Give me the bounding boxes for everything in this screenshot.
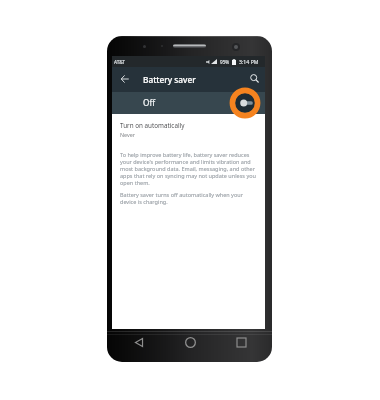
- staticText: 3:14 PM: [239, 58, 259, 65]
- staticText: 95%: [220, 59, 230, 65]
- staticText: Never: [120, 131, 136, 138]
- button[interactable]: Navigate up: [116, 70, 133, 87]
- button[interactable]: Battery saver toggle, off: [228, 86, 262, 120]
- staticText: Battery saver: [143, 74, 196, 85]
- button[interactable]: Off: [112, 92, 265, 114]
- button[interactable]: Back: [130, 333, 148, 351]
- staticText: Turn on automatically: [120, 121, 185, 130]
- staticText: AT&T: [114, 59, 125, 65]
- button[interactable]: Home: [181, 333, 199, 351]
- staticText: Off: [143, 97, 156, 108]
- button[interactable]: Search: [246, 70, 263, 87]
- staticText: To help improve battery life, battery sa…: [120, 151, 256, 186]
- button[interactable]: Recent apps: [232, 333, 250, 351]
- staticText: Battery saver turns off automatically wh…: [120, 191, 256, 205]
